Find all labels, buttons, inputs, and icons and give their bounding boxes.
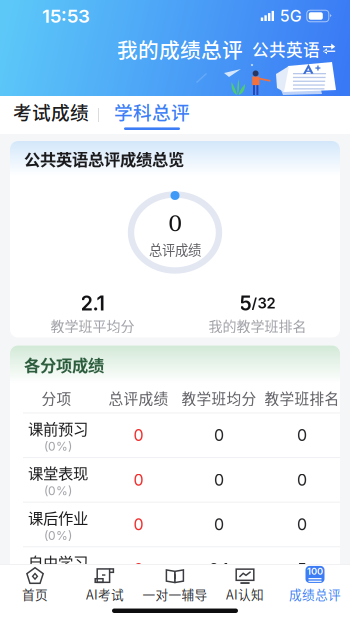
staticText: 课堂表现 [28,461,88,484]
button[interactable]: 首页 [0,567,70,603]
button[interactable]: AI考试 [70,567,140,603]
button[interactable]: 考试成绩 [4,96,98,134]
staticText: (0%) [44,484,72,498]
staticText: 教学班均分 [181,387,256,409]
staticText: 考试成绩 [13,98,89,125]
staticText: 各分项成绩 [24,353,104,376]
staticText: 我的成绩总评 [117,34,243,64]
button[interactable]: 学科总评 [99,96,205,134]
staticText: 总评成绩 [149,239,201,259]
staticText: /32 [251,294,275,312]
staticText: 首页 [22,585,48,603]
staticText: 0 [133,559,143,579]
staticText: 自由学习 [28,551,88,573]
staticText: 0 [133,470,143,490]
staticText: 学科总评 [114,98,190,125]
staticText: 2.1 [80,291,104,315]
button[interactable]: 公共英语 [252,33,336,65]
staticText: 5G [280,6,302,26]
staticText: 5 [297,559,307,579]
staticText: 0 [168,210,182,237]
staticText: 15:53 [42,5,90,27]
staticText: 我的教学班排名 [208,315,306,335]
staticText: AI考试 [86,585,124,603]
button[interactable]: 100 [280,567,350,603]
staticText: 5 [239,291,251,315]
staticText: 100 [307,566,323,577]
staticText: 一对一辅导 [142,585,207,603]
staticText: 成绩总评 [289,585,341,603]
button[interactable]: AI认知 [210,567,280,603]
staticText: AI认知 [226,585,264,603]
staticText: 2.1 [209,559,229,579]
staticText: 公共英语总评成绩总览 [24,147,184,170]
staticText: 0 [297,515,307,534]
staticText: 课前预习 [28,417,88,439]
staticText: 分项 [41,387,71,409]
staticText: 教学班平均分 [50,315,134,335]
staticText: 0 [214,426,224,445]
staticText: 0 [214,470,224,490]
button[interactable]: 一对一辅导 [140,567,210,603]
staticText: 总评成绩 [108,387,168,409]
staticText: 0 [297,470,307,490]
staticText: 课后作业 [28,506,88,528]
staticText: (0%) [44,439,72,454]
staticText: 0 [297,426,307,445]
staticText: 0 [133,515,143,534]
staticText: (0%) [44,528,72,543]
staticText: 0 [133,426,143,445]
staticText: 公共英语 [252,37,320,61]
staticText: (100%) [37,573,78,587]
staticText: 教学班排名 [264,387,339,409]
staticText: 0 [214,515,224,534]
